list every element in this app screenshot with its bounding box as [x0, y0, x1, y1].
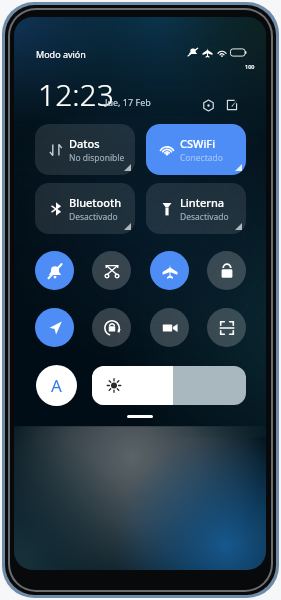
button[interactable]: Rotation lock [92, 308, 131, 347]
staticText: Bluetooth [69, 195, 122, 210]
staticText: Desactivado [69, 211, 118, 223]
button[interactable] [92, 366, 246, 405]
staticText: A [51, 374, 62, 397]
staticText: Conectado [180, 152, 223, 164]
button[interactable]: Location [35, 308, 74, 347]
button[interactable]: A [36, 365, 77, 406]
staticText: No disponible [69, 152, 125, 164]
staticText: Linterna [180, 195, 225, 210]
button[interactable]: Datos móviles [35, 124, 135, 175]
staticText: Datos móviles [69, 136, 135, 151]
button[interactable]: Screen record [150, 308, 189, 347]
button[interactable]: Cast [92, 251, 131, 290]
staticText: Desactivado [180, 211, 229, 223]
button[interactable]: Lock [207, 251, 246, 290]
button[interactable]: Settings [197, 94, 219, 116]
staticText: CSWiFi [180, 136, 216, 151]
staticText: 12:23 [38, 74, 114, 115]
staticText: 100 [245, 63, 255, 70]
staticText: Modo avión [36, 48, 86, 60]
button[interactable]: Scanner [207, 308, 246, 347]
button[interactable]: Airplane mode [150, 251, 189, 290]
staticText: Jue, 17 Feb [105, 96, 151, 108]
button[interactable]: Silent [35, 251, 74, 290]
button[interactable]: Linterna [146, 183, 246, 234]
button[interactable]: CSWiFi [146, 124, 246, 175]
button[interactable]: Edit [221, 94, 243, 116]
button[interactable]: Bluetooth [35, 183, 135, 234]
